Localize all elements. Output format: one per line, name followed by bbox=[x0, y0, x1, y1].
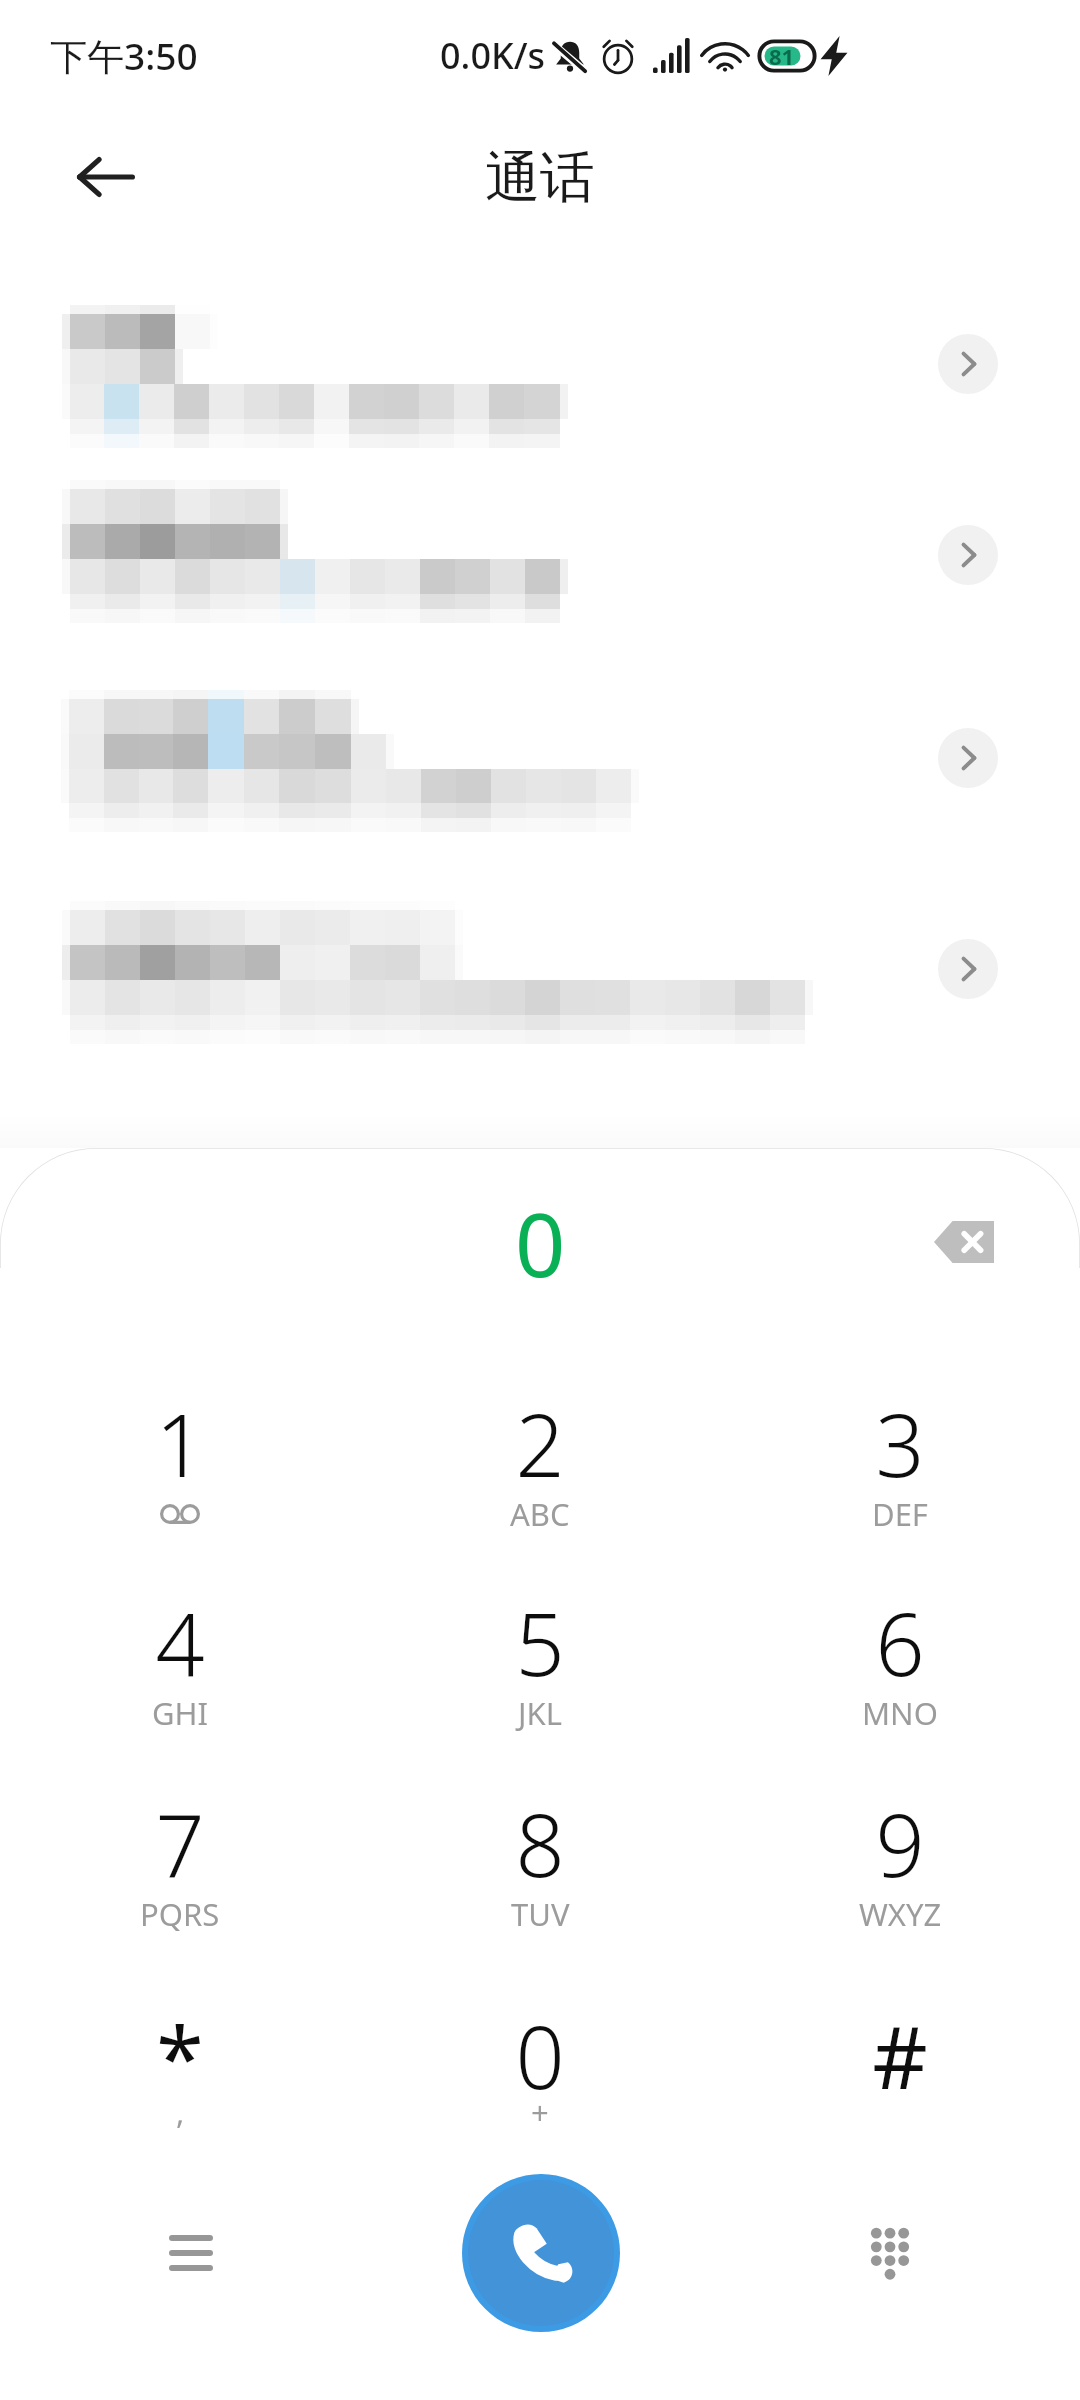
button[interactable]: # bbox=[720, 1997, 1080, 2172]
button[interactable]: 9 bbox=[720, 1785, 1080, 1960]
button[interactable]: Call log entry bbox=[0, 286, 1080, 461]
staticText: PQRS bbox=[140, 1893, 220, 1935]
staticText: * bbox=[156, 1997, 204, 2114]
staticText: MNO bbox=[862, 1692, 938, 1734]
staticText: 2 bbox=[515, 1385, 565, 1502]
button[interactable]: 0 bbox=[360, 1997, 720, 2172]
button[interactable]: Call details bbox=[938, 939, 998, 999]
staticText: 下午3:50 bbox=[50, 30, 198, 81]
button[interactable]: 7 bbox=[0, 1785, 360, 1960]
staticText: 7 bbox=[155, 1785, 205, 1902]
staticText: 3 bbox=[875, 1385, 925, 1502]
staticText: 6 bbox=[875, 1584, 925, 1701]
staticText: DEF bbox=[872, 1493, 928, 1535]
staticText: 1 bbox=[155, 1385, 205, 1502]
button[interactable]: 3 bbox=[720, 1385, 1080, 1560]
button[interactable]: Call log menu bbox=[146, 2208, 236, 2298]
button[interactable]: Back bbox=[56, 127, 156, 227]
staticText: GHI bbox=[152, 1692, 209, 1734]
staticText: , bbox=[176, 2091, 185, 2133]
button[interactable]: Call bbox=[468, 2180, 614, 2326]
staticText: 0.0K/s bbox=[440, 31, 546, 80]
button[interactable]: Call details bbox=[938, 728, 998, 788]
button[interactable]: Call details bbox=[938, 334, 998, 394]
button[interactable]: Call log entry bbox=[0, 461, 1080, 636]
button[interactable]: 5 bbox=[360, 1584, 720, 1759]
button[interactable]: 6 bbox=[720, 1584, 1080, 1759]
button[interactable]: Call details bbox=[938, 525, 998, 585]
button[interactable]: * bbox=[0, 1997, 360, 2172]
button[interactable]: Call log entry bbox=[0, 671, 1080, 846]
staticText: 5 bbox=[515, 1584, 565, 1701]
staticText: 通话 bbox=[485, 143, 595, 212]
staticText: 0 bbox=[515, 1997, 565, 2114]
staticText: 0 bbox=[515, 1183, 566, 1303]
staticText: JKL bbox=[518, 1692, 562, 1734]
button[interactable]: Call log entry bbox=[0, 882, 1080, 1057]
staticText: ABC bbox=[510, 1493, 570, 1535]
staticText: 9 bbox=[875, 1785, 925, 1902]
button[interactable]: Backspace bbox=[918, 1194, 1010, 1290]
staticText: 8 bbox=[515, 1785, 565, 1902]
staticText: TUV bbox=[511, 1893, 570, 1935]
button[interactable]: 2 bbox=[360, 1385, 720, 1560]
staticText: 4 bbox=[155, 1584, 205, 1701]
staticText: # bbox=[872, 1997, 928, 2114]
staticText: 81 bbox=[769, 41, 795, 71]
button[interactable]: 1 bbox=[0, 1385, 360, 1560]
staticText: + bbox=[531, 2091, 549, 2133]
button[interactable]: 4 bbox=[0, 1584, 360, 1759]
button[interactable]: 8 bbox=[360, 1785, 720, 1960]
button[interactable]: Dialpad bbox=[845, 2208, 935, 2298]
staticText: WXYZ bbox=[859, 1893, 942, 1935]
